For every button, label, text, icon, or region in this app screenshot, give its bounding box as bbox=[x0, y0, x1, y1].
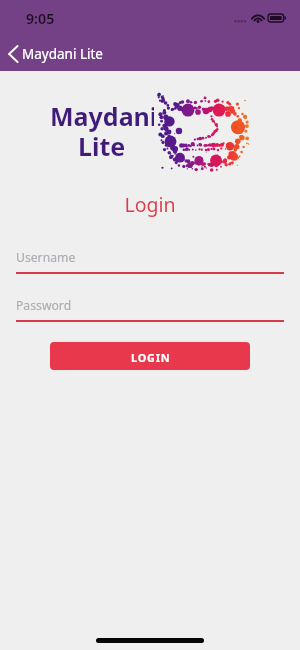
button[interactable]: Back bbox=[4, 43, 26, 65]
staticText: Username bbox=[16, 249, 76, 266]
button[interactable]: LOGIN bbox=[50, 342, 250, 370]
staticText: LOGIN bbox=[131, 350, 171, 365]
staticText: Maydani Lite bbox=[22, 45, 103, 63]
staticText: Login bbox=[0, 191, 300, 218]
staticText: Lite bbox=[78, 129, 126, 163]
button[interactable]: Password bbox=[16, 289, 284, 328]
button[interactable]: Username bbox=[16, 241, 284, 280]
staticText: Password bbox=[16, 297, 72, 314]
staticText: 9:05 bbox=[26, 9, 55, 28]
staticText: Maydani bbox=[50, 99, 154, 133]
